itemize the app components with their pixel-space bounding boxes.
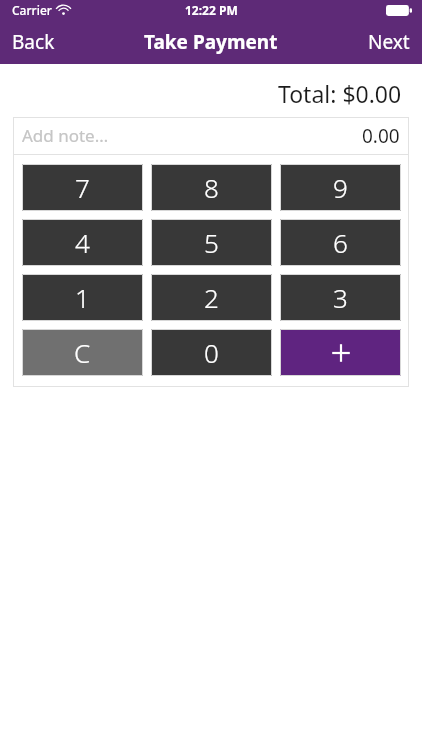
button[interactable]: 3 (280, 274, 401, 321)
button[interactable]: 6 (280, 219, 401, 266)
button[interactable]: C (22, 329, 143, 376)
staticText: 2 (204, 280, 219, 315)
button[interactable]: 0 (151, 329, 272, 376)
button[interactable]: 5 (151, 219, 272, 266)
staticText: 8 (204, 170, 219, 205)
staticText: 7 (75, 170, 90, 205)
staticText: 9 (333, 170, 348, 205)
button[interactable]: 2 (151, 274, 272, 321)
staticText: C (74, 335, 91, 370)
staticText: Next (368, 29, 410, 55)
staticText: 12:22 PM (185, 2, 238, 18)
staticText: Carrier (12, 2, 52, 18)
button[interactable]: Back (0, 23, 67, 61)
staticText: 3 (333, 280, 348, 315)
button[interactable]: Add note… (13, 117, 409, 154)
button[interactable]: 1 (22, 274, 143, 321)
staticText: Total: $0.00 (278, 78, 402, 109)
button[interactable]: 7 (22, 164, 143, 211)
button[interactable]: 4 (22, 219, 143, 266)
staticText: 4 (75, 225, 90, 260)
staticText: 5 (204, 225, 219, 260)
button[interactable]: Add (280, 329, 401, 376)
button[interactable]: Next (356, 23, 422, 61)
button[interactable]: 9 (280, 164, 401, 211)
staticText: 0.00 (362, 123, 400, 149)
staticText: 1 (75, 280, 90, 315)
staticText: 0 (204, 335, 219, 370)
staticText: Back (12, 29, 55, 55)
staticText: 6 (333, 225, 348, 260)
staticText: Add note… (22, 124, 109, 147)
button[interactable]: 8 (151, 164, 272, 211)
staticText: Take Payment (144, 29, 278, 55)
